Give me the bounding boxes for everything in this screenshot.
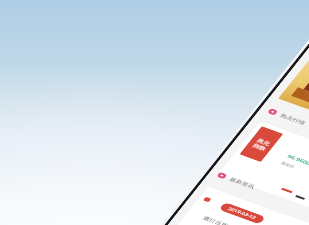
staticText: 通打压所有的贵金属 — [201, 215, 260, 225]
button[interactable] — [153, 184, 309, 225]
button[interactable] — [216, 119, 309, 225]
staticText: 最新价 — [280, 161, 296, 169]
staticText: 2019-03-12 — [226, 206, 258, 221]
staticText: 热点行情 — [278, 112, 307, 126]
button[interactable]: 2019-03-12 — [218, 202, 266, 225]
staticText: 最新资讯 — [228, 176, 256, 190]
staticText: 美元 指数 — [251, 137, 272, 152]
button[interactable]: 热点行情 — [261, 104, 309, 130]
staticText: 96.9600 — [285, 153, 309, 167]
button[interactable]: 最新资讯 — [210, 168, 262, 193]
